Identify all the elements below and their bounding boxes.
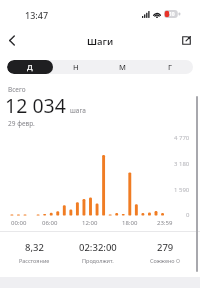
button[interactable]: Back (1, 30, 22, 51)
staticText: 12 034 (5, 92, 66, 119)
staticText: 02:32:00 (79, 241, 117, 254)
staticText: 279 (157, 241, 174, 254)
staticText: Д (27, 62, 33, 72)
staticText: 00:00 (11, 219, 27, 227)
staticText: Г (168, 62, 172, 72)
staticText: 8,32 (25, 241, 44, 254)
button[interactable]: Share (176, 30, 197, 51)
staticText: 3 180 (174, 160, 190, 168)
staticText: М (119, 62, 126, 72)
button[interactable]: Г (146, 60, 193, 74)
staticText: 06:00 (42, 219, 58, 227)
staticText: 10 (169, 11, 175, 18)
button[interactable]: 02:32:00 (65, 241, 131, 264)
button[interactable]: Н (53, 60, 99, 74)
staticText: шага (70, 106, 86, 115)
staticText: Шаги (87, 35, 114, 48)
staticText: Расстояние (19, 257, 50, 264)
staticText: 23:59 (157, 219, 173, 227)
staticText: 13:47 (25, 9, 49, 21)
staticText: Всего (8, 85, 26, 94)
staticText: 12:00 (82, 219, 98, 227)
staticText: 0 (186, 211, 190, 219)
staticText: 1 590 (174, 186, 190, 194)
button[interactable]: М (99, 60, 146, 74)
staticText: Н (73, 62, 79, 72)
staticText: 4 770 (174, 134, 190, 142)
staticText: 29 февр. (8, 119, 35, 128)
staticText: Сожжено (150, 257, 175, 264)
button[interactable]: 279 (132, 241, 198, 264)
staticText: 18:00 (122, 219, 138, 227)
staticText: Продолжит. (82, 257, 114, 264)
button[interactable]: Д (7, 60, 53, 74)
button[interactable]: 8,32 (1, 241, 67, 264)
